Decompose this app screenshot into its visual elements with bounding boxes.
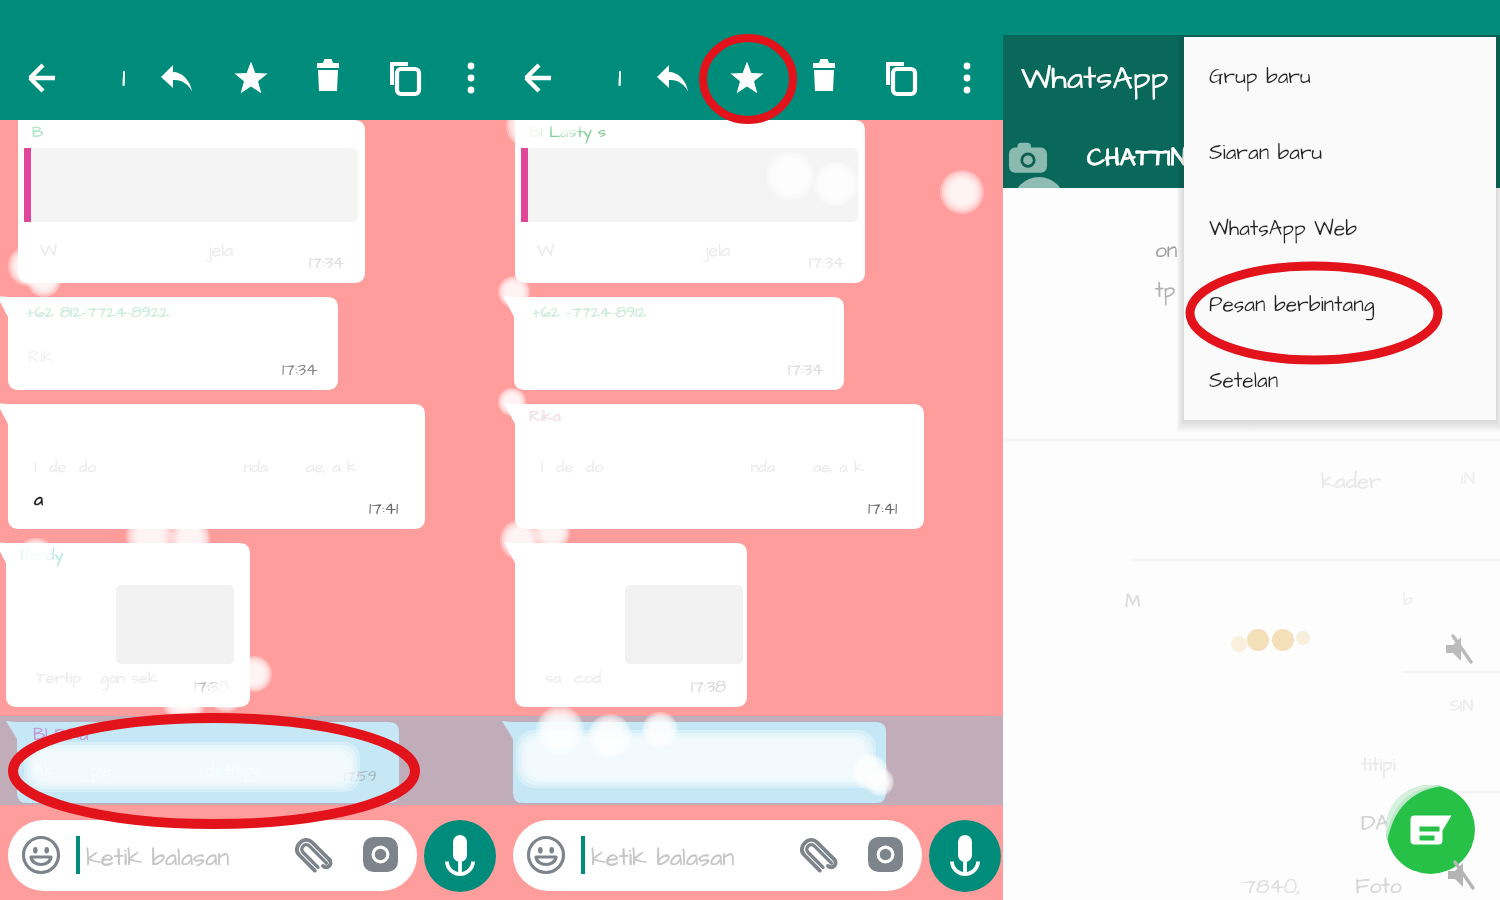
button[interactable]: Star (721, 52, 773, 104)
button[interactable]: B (18, 120, 365, 283)
button[interactable]: More options (445, 52, 497, 104)
button[interactable]: Muted (1441, 632, 1475, 666)
button[interactable]: Rika (515, 404, 924, 529)
staticText: Grup baru (1209, 62, 1311, 91)
button[interactable]: Voice message (929, 820, 1001, 892)
staticText: IN (1461, 466, 1476, 491)
staticText: 17:41 (369, 497, 399, 521)
staticText: ketik balasan (86, 841, 230, 874)
staticText: 1 (618, 59, 622, 97)
staticText: ketik balasan (591, 841, 735, 874)
button[interactable]: Attach (291, 834, 333, 876)
button[interactable]: Reply (646, 52, 698, 104)
staticText: Bl Rika (33, 723, 89, 747)
staticText: 17:34 (809, 251, 845, 275)
staticText: DA... (1361, 808, 1399, 839)
staticText: on (1155, 236, 1178, 265)
staticText: Hendy (20, 544, 64, 566)
button[interactable]: Muted (1443, 858, 1477, 892)
staticText: 17:38 (194, 675, 230, 699)
button[interactable]: Pesan berbintang (1184, 266, 1496, 342)
staticText: 17:41 (868, 497, 898, 521)
staticText: B (32, 121, 44, 143)
staticText: +62 -7724-8912 (532, 301, 647, 323)
button[interactable]: l de do nda ae, a k (8, 404, 425, 529)
button[interactable]: Camera (868, 837, 903, 872)
staticText: WhatsApp Web (1209, 214, 1358, 243)
staticText: CHATTING (1087, 140, 1187, 182)
button[interactable]: ketik balasan (8, 820, 417, 891)
button[interactable]: Star (225, 52, 277, 104)
button[interactable]: New chat (1386, 785, 1475, 874)
button[interactable]: Bl Rika (17, 722, 399, 803)
staticText: l de do nda ae, a k (34, 456, 357, 478)
button[interactable]: Delete (798, 52, 850, 104)
button[interactable]: Attach (796, 834, 838, 876)
staticText: Rik (28, 345, 54, 369)
button[interactable]: Camera (1009, 140, 1047, 178)
button[interactable]: Siaran baru (1184, 114, 1496, 190)
button[interactable]: Emoji (526, 835, 566, 875)
staticText: sa cod (545, 667, 602, 689)
button[interactable]: ketik balasan (513, 820, 922, 891)
staticText: b (1403, 588, 1413, 612)
staticText: M (1125, 588, 1141, 614)
button[interactable]: Delete (302, 52, 354, 104)
staticText: W jela (537, 238, 731, 263)
button[interactable]: Camera (363, 837, 398, 872)
staticText: 1 (122, 59, 126, 97)
button[interactable]: Back (512, 52, 564, 104)
button[interactable]: sa cod (515, 543, 747, 707)
button[interactable]: Grup baru (1184, 38, 1496, 114)
staticText: titipi (1361, 752, 1396, 778)
staticText: Setelan (1209, 366, 1279, 395)
button[interactable]: Voice message (424, 820, 496, 892)
button[interactable]: +62 -7724-8912 (514, 297, 844, 390)
button[interactable] (513, 722, 886, 803)
button[interactable]: Setelan (1184, 342, 1496, 418)
button[interactable]: BI Lasty s (515, 120, 865, 283)
staticText: SIN (1449, 694, 1474, 718)
staticText: WhatsApp (1021, 56, 1169, 100)
staticText: l de do nda ae, a k (541, 456, 864, 478)
button[interactable]: CHATTING (1087, 140, 1187, 182)
staticText: 17:34 (282, 358, 318, 382)
button[interactable]: +62 812-7724-8922 (8, 297, 338, 390)
staticText: tp (1155, 276, 1176, 305)
button[interactable]: Emoji (21, 835, 61, 875)
button[interactable]: Reply (150, 52, 202, 104)
button[interactable]: 1 (105, 54, 143, 102)
staticText: W jela (40, 238, 234, 263)
button[interactable]: Hendy (6, 543, 250, 707)
staticText: Tertip gan sek (36, 667, 158, 689)
button[interactable]: Back (16, 52, 68, 104)
staticText: kader (1321, 466, 1382, 497)
staticText: 17:38 (691, 675, 727, 699)
staticText: 17:34 (788, 358, 824, 382)
staticText: 7840, (1243, 872, 1301, 900)
button[interactable]: Copy (378, 52, 430, 104)
button[interactable]: WhatsApp Web (1184, 190, 1496, 266)
staticText: a (34, 487, 44, 512)
staticText: 17:34 (309, 251, 345, 275)
staticText: BI Lasty s (529, 121, 607, 143)
staticText: Rika (529, 405, 561, 427)
button[interactable]: 1 (601, 54, 639, 102)
staticText: Pesan berbintang (1209, 290, 1375, 319)
staticText: Siaran baru (1209, 138, 1323, 167)
staticText: +62 812-7724-8922 (26, 301, 170, 323)
button[interactable]: More options (941, 52, 993, 104)
staticText: Foto (1355, 872, 1402, 900)
staticText: 17.59 (344, 766, 377, 787)
button[interactable]: Copy (874, 52, 926, 104)
